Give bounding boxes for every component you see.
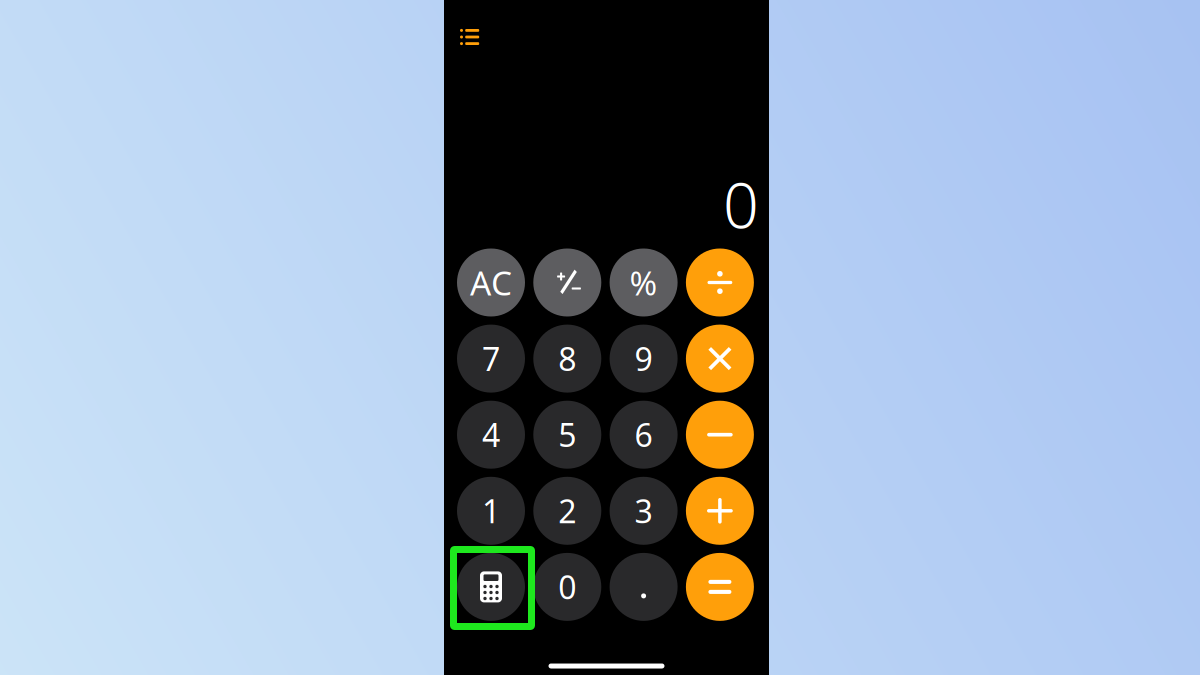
button[interactable]: 1: [457, 477, 525, 545]
button[interactable]: 8: [533, 325, 601, 393]
staticText: 8: [558, 337, 576, 380]
staticText: AC: [470, 260, 512, 305]
button[interactable]: Plus minus: [533, 248, 601, 316]
button[interactable]: Divide: [686, 248, 754, 316]
staticText: 0: [558, 566, 576, 608]
button[interactable]: 7: [457, 325, 525, 393]
button[interactable]: Plus: [686, 477, 754, 545]
button[interactable]: 5: [533, 401, 601, 469]
button[interactable]: 4: [457, 401, 525, 469]
staticText: 6: [635, 413, 653, 456]
button[interactable]: Equals: [686, 553, 754, 621]
button[interactable]: %: [610, 248, 678, 316]
staticText: 9: [635, 337, 653, 380]
button[interactable]: Calculator mode: [457, 553, 525, 621]
button[interactable]: Decimal point: [610, 553, 678, 621]
staticText: 3: [635, 490, 653, 532]
button[interactable]: AC: [457, 248, 525, 316]
staticText: 1: [482, 490, 500, 532]
button[interactable]: 0: [533, 553, 601, 621]
staticText: 0: [723, 162, 759, 246]
button[interactable]: Minus: [686, 401, 754, 469]
staticText: 2: [558, 490, 576, 532]
staticText: 7: [482, 337, 500, 380]
button[interactable]: 3: [610, 477, 678, 545]
button[interactable]: Multiply: [686, 325, 754, 393]
button[interactable]: History: [450, 17, 490, 57]
staticText: 5: [558, 413, 576, 456]
button[interactable]: 2: [533, 477, 601, 545]
staticText: %: [630, 260, 658, 305]
staticText: 4: [482, 413, 500, 456]
button[interactable]: 9: [610, 325, 678, 393]
button[interactable]: 6: [610, 401, 678, 469]
